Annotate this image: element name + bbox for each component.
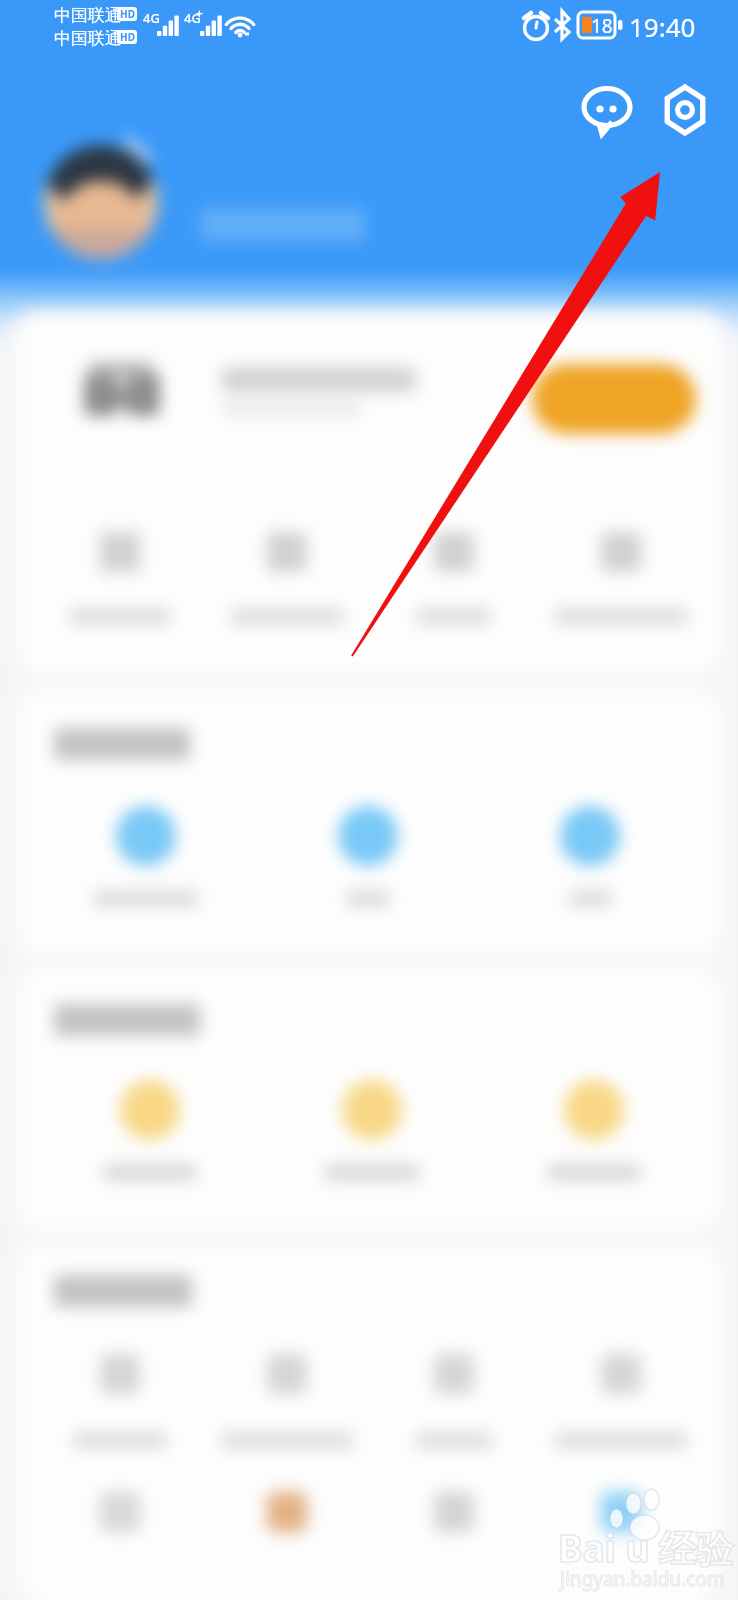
staticText: HD [120,7,135,21]
staticText: 18 [591,13,613,39]
staticText: HD [120,30,135,44]
staticText: 19:40 [629,9,696,44]
staticText: Bai u 经验 [558,1522,734,1573]
staticText: 中国联通 [54,28,122,49]
staticText: 中国联通 [54,5,122,26]
staticText: 4G [143,9,160,27]
button[interactable]: Settings [655,80,715,140]
staticText: + [196,5,203,21]
staticText: Bai u 经验 [558,1522,734,1573]
staticText: jingyan.baidu.com [560,1566,725,1592]
staticText: jingyan.baidu.com [560,1566,725,1592]
button[interactable]: Messages [577,77,637,137]
staticText: 4G [184,9,201,27]
